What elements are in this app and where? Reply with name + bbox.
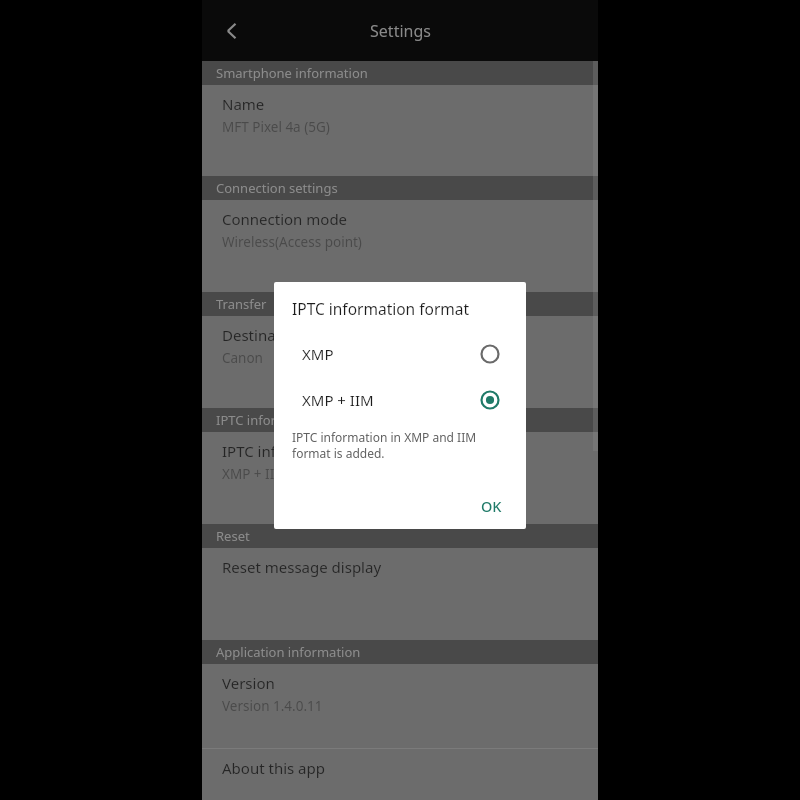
button[interactable]: Reset message display: [202, 548, 598, 640]
staticText: Name: [222, 94, 265, 114]
button[interactable]: XMP + IIM: [274, 377, 526, 423]
staticText: Reset message display: [222, 557, 382, 577]
button[interactable]: OK: [467, 488, 516, 524]
staticText: Wireless(Access point): [222, 233, 362, 251]
staticText: Canon: [222, 349, 263, 367]
staticText: Transfer: [216, 295, 267, 313]
staticText: IPTC information: [216, 411, 320, 429]
staticText: OK: [481, 496, 502, 516]
button[interactable]: XMP: [274, 331, 526, 377]
staticText: Application information: [216, 643, 361, 661]
staticText: MFT Pixel 4a (5G): [222, 118, 330, 136]
staticText: IPTC information in XMP and IIM format i…: [292, 429, 510, 461]
staticText: XMP + IIM: [222, 465, 287, 483]
button[interactable]: Name: [202, 85, 598, 176]
staticText: XMP: [302, 344, 334, 364]
staticText: Connection settings: [216, 179, 338, 197]
staticText: IPTC information format: [292, 298, 470, 319]
button[interactable]: About this app: [202, 749, 598, 800]
button[interactable]: Back: [210, 9, 254, 53]
staticText: Connection mode: [222, 209, 348, 229]
staticText: About this app: [222, 758, 325, 778]
staticText: Settings: [370, 20, 431, 42]
staticText: Destination: [222, 325, 304, 345]
button[interactable]: IPTC information format: [202, 432, 598, 524]
staticText: XMP + IIM: [302, 390, 374, 410]
staticText: Version: [222, 673, 275, 693]
staticText: Version 1.4.0.11: [222, 697, 323, 715]
staticText: Reset: [216, 527, 250, 545]
staticText: Smartphone information: [216, 64, 368, 82]
button[interactable]: Version: [202, 664, 598, 748]
button[interactable]: Connection mode: [202, 200, 598, 292]
button[interactable]: Destination: [202, 316, 598, 408]
staticText: IPTC information format: [222, 441, 394, 461]
